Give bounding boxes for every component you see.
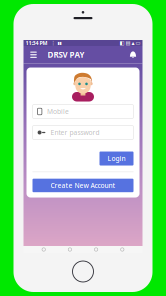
staticText: ◧ [119, 40, 124, 46]
button[interactable]: Notifications [126, 46, 139, 63]
button[interactable]: Home [64, 246, 76, 253]
button[interactable]: Recents [90, 246, 102, 253]
button[interactable]: Login [99, 151, 133, 165]
staticText: ▲ [131, 41, 134, 45]
button[interactable]: Mobile [32, 104, 133, 118]
staticText: ▭ [135, 40, 140, 46]
staticText: Enter password [50, 128, 99, 137]
staticText: Mobile [47, 107, 69, 116]
staticText: Create New Account [50, 181, 115, 190]
button[interactable]: Menu [26, 46, 40, 63]
staticText: ▮▮ [57, 41, 61, 45]
button[interactable]: Create New Account [32, 179, 133, 192]
button[interactable]: Star [116, 246, 128, 253]
staticText: ⋮ [50, 40, 55, 46]
staticText: ▤ [125, 40, 130, 46]
staticText: DRSV PAY [47, 49, 84, 60]
button[interactable]: Enter password [32, 125, 133, 139]
button[interactable]: Back [38, 246, 50, 253]
staticText: 11:34 PM [25, 39, 47, 47]
staticText: Login [107, 154, 125, 163]
